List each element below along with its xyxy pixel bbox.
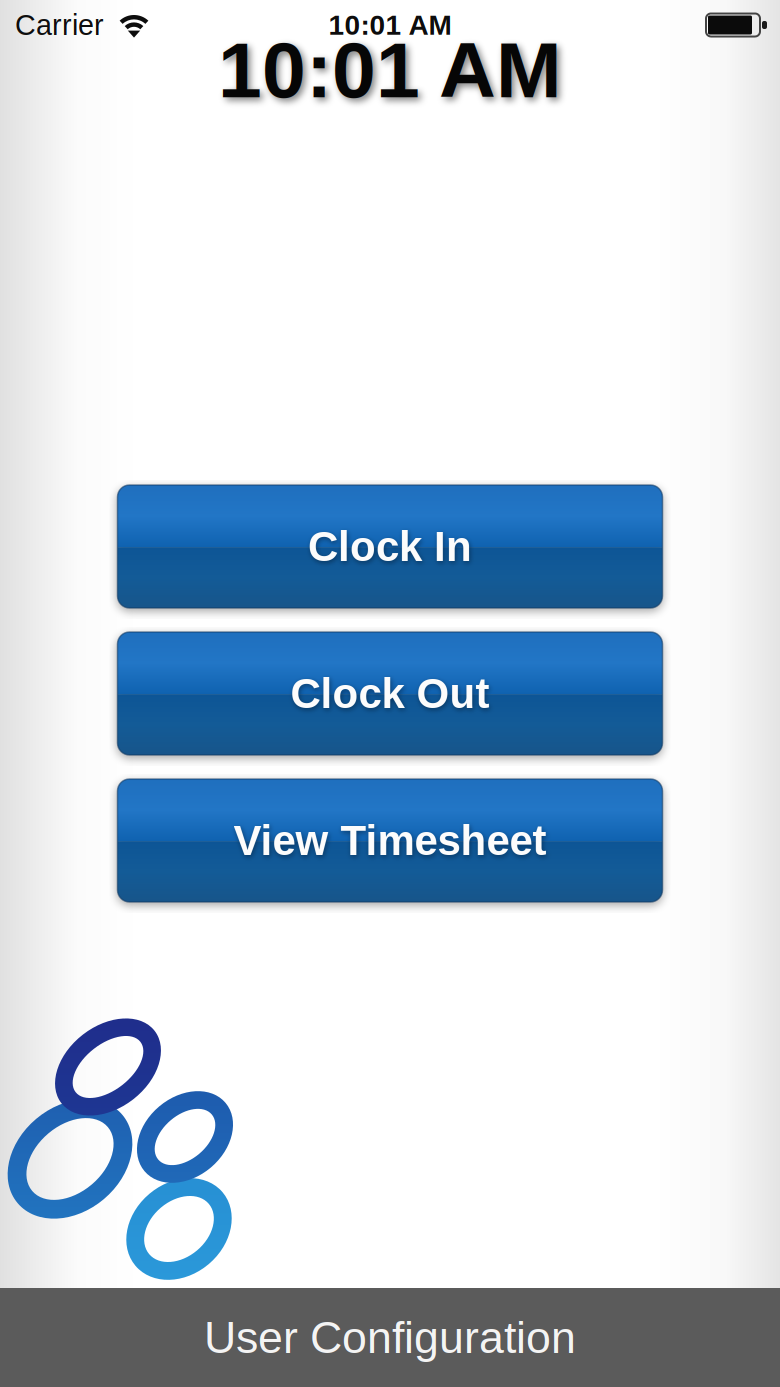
button[interactable]: View Timesheet [117, 779, 662, 902]
staticText: 10:01 AM [218, 26, 562, 114]
button[interactable]: Clock Out [117, 632, 662, 755]
button[interactable]: User Configuration [0, 1288, 780, 1387]
staticText: View Timesheet [233, 817, 546, 864]
staticText: 10:01 AM [328, 9, 451, 41]
button[interactable]: Clock In [117, 485, 662, 608]
staticText: Clock In [308, 523, 472, 570]
staticText: Clock Out [290, 670, 489, 717]
staticText: Carrier [15, 9, 104, 41]
staticText: User Configuration [204, 1312, 576, 1362]
